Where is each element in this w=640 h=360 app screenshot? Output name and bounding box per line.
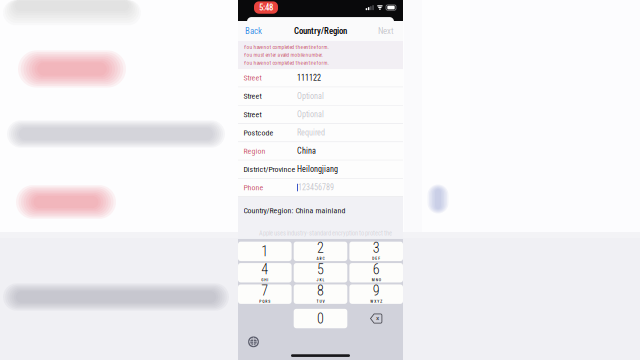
- staticText: G H I: [261, 278, 268, 282]
- button[interactable]: 3: [349, 242, 403, 261]
- staticText: Street: [243, 73, 261, 82]
- button[interactable]: Next: [364, 21, 403, 41]
- staticText: ×: [376, 314, 379, 323]
- staticText: You have not completed the entire form.: [243, 60, 328, 66]
- staticText: J K L: [316, 278, 324, 282]
- staticText: 111122: [297, 73, 321, 83]
- staticText: D E F: [372, 256, 380, 261]
- staticText: T U V: [316, 299, 324, 304]
- staticText: 7: [261, 282, 268, 299]
- button[interactable]: 6: [349, 263, 403, 282]
- staticText: 5:48: [259, 2, 273, 13]
- button[interactable]: 1: [238, 242, 292, 261]
- staticText: Region: [243, 146, 265, 156]
- staticText: You have not completed the entire form.: [243, 44, 328, 50]
- staticText: 0: [317, 310, 324, 327]
- button[interactable]: 5: [294, 263, 347, 282]
- button[interactable]: Region: [238, 142, 403, 160]
- staticText: 3: [373, 240, 380, 256]
- staticText: Next: [378, 26, 394, 36]
- staticText: District/Province: [243, 165, 295, 174]
- staticText: 5: [317, 261, 324, 278]
- staticText: Apple uses industry-standard encryption …: [259, 229, 392, 237]
- staticText: Postcode: [243, 128, 273, 137]
- button[interactable]: Back: [238, 21, 275, 41]
- staticText: Country/Region: China mainland: [243, 206, 345, 215]
- staticText: W X Y Z: [370, 299, 382, 304]
- button[interactable]: Postcode: [238, 124, 403, 142]
- staticText: Street: [243, 110, 261, 119]
- button[interactable]: 7: [238, 284, 292, 304]
- button[interactable]: District/Province: [238, 160, 403, 179]
- button[interactable]: Phone: [238, 179, 403, 197]
- button[interactable]: Street: [238, 69, 403, 87]
- staticText: 9: [373, 282, 380, 299]
- staticText: 8: [317, 282, 324, 299]
- staticText: 6: [373, 261, 380, 278]
- staticText: Required: [297, 128, 325, 137]
- button[interactable]: 4: [238, 263, 292, 282]
- button[interactable]: Delete: [349, 309, 403, 328]
- staticText: P Q R S: [259, 299, 270, 304]
- staticText: Back: [245, 26, 262, 36]
- staticText: China: [297, 146, 316, 156]
- button[interactable]: Street: [238, 106, 403, 124]
- staticText: M N O: [372, 278, 381, 282]
- button[interactable]: 0: [294, 309, 347, 328]
- staticText: Phone: [243, 183, 263, 192]
- staticText: Optional: [297, 110, 324, 119]
- staticText: Heilongjiang: [297, 164, 338, 174]
- button[interactable]: Change keyboard: [245, 334, 261, 350]
- staticText: You must enter a valid mobile number.: [243, 52, 322, 58]
- staticText: Optional: [297, 91, 324, 101]
- staticText: 1: [261, 243, 268, 260]
- staticText: 2: [317, 240, 324, 256]
- button[interactable]: 8: [294, 284, 347, 304]
- staticText: A B C: [316, 256, 324, 261]
- staticText: 4: [261, 261, 268, 278]
- staticText: Street: [243, 92, 261, 101]
- staticText: Country/Region: [294, 26, 347, 36]
- button[interactable]: Street: [238, 87, 403, 106]
- button[interactable]: 2: [294, 242, 347, 261]
- button[interactable]: 9: [349, 284, 403, 304]
- staticText: 123456789: [298, 183, 334, 192]
